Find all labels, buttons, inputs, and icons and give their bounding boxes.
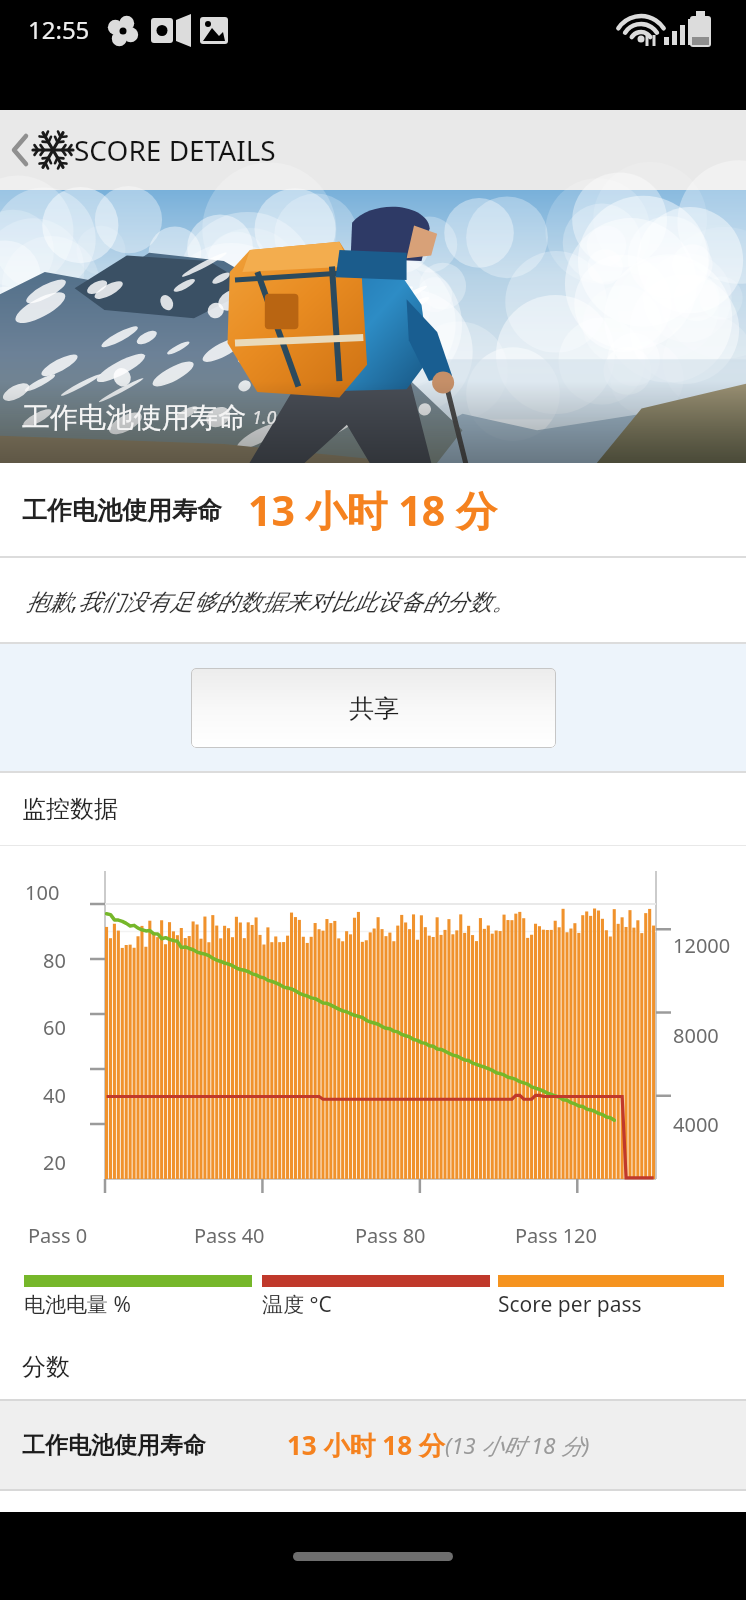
- staticText: Pass 80: [355, 1222, 426, 1249]
- staticText: 温度 °C: [262, 1290, 332, 1319]
- staticText: 4000: [673, 1111, 719, 1138]
- staticText: 60: [43, 1014, 66, 1041]
- staticText: 20: [43, 1149, 66, 1176]
- staticText: 13 小时 18 分: [287, 1427, 445, 1463]
- staticText: 80: [43, 947, 66, 974]
- button[interactable]: 工作电池使用寿命: [0, 1401, 746, 1489]
- staticText: Score per pass: [498, 1290, 642, 1319]
- button[interactable]: 共享: [191, 668, 556, 748]
- staticText: 1.0: [252, 405, 277, 430]
- staticText: Pass 40: [194, 1222, 265, 1249]
- staticText: 电池电量 %: [24, 1290, 131, 1319]
- staticText: Pass 120: [515, 1222, 597, 1249]
- staticText: 分数: [22, 1352, 70, 1382]
- staticText: 监控数据: [22, 794, 118, 824]
- staticText: 8000: [673, 1022, 719, 1049]
- staticText: Pass 0: [28, 1222, 88, 1249]
- staticText: 工作电池使用寿命: [22, 400, 246, 435]
- staticText: SCORE DETAILS: [74, 131, 276, 169]
- staticText: 抱歉,我们没有足够的数据来对比此设备的分数。: [26, 585, 515, 616]
- staticText: 40: [43, 1082, 66, 1109]
- button[interactable]: Home: [293, 1552, 453, 1561]
- button[interactable]: Back: [0, 110, 746, 190]
- staticText: 工作电池使用寿命: [22, 495, 222, 526]
- staticText: 工作电池使用寿命: [22, 1431, 206, 1460]
- staticText: (13 小时 18 分): [445, 1430, 590, 1460]
- staticText: 12000: [673, 932, 731, 959]
- staticText: 12:55: [28, 13, 90, 46]
- staticText: 13 小时 18 分: [248, 482, 497, 538]
- staticText: 共享: [349, 693, 399, 724]
- staticText: 100: [25, 879, 60, 906]
